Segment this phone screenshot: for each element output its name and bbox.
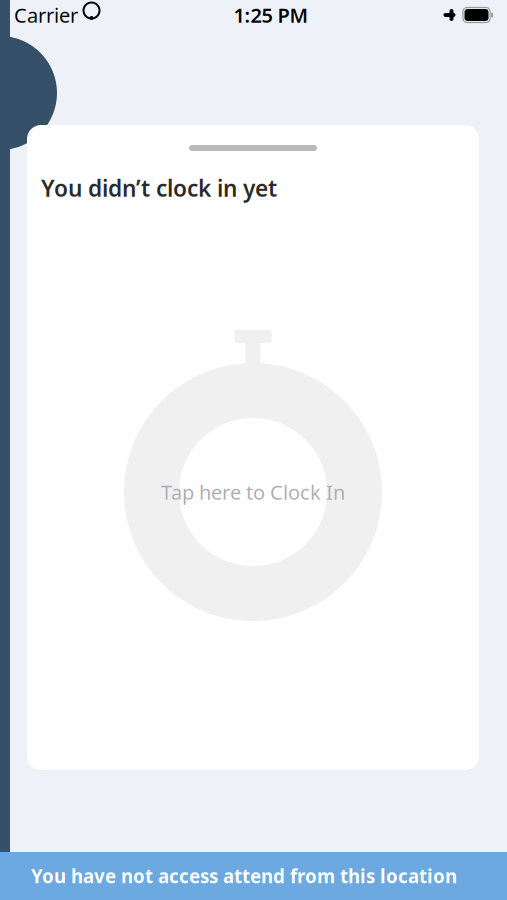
staticText: You have not access attend from this loc… <box>31 864 457 888</box>
staticText: Carrier <box>14 2 78 28</box>
button[interactable]: Tap here to Clock In <box>124 327 382 624</box>
staticText: You didn’t clock in yet <box>41 173 277 203</box>
staticText: Tap here to Clock In <box>161 479 345 505</box>
staticText: 1:25 PM <box>233 2 308 28</box>
button[interactable]: Menu <box>0 36 57 150</box>
button[interactable]: You have not access attend from this loc… <box>0 852 507 900</box>
